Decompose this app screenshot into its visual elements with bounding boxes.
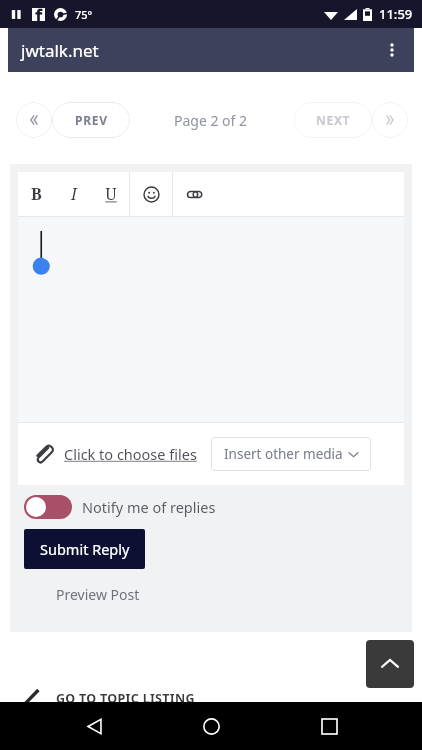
button[interactable]: B bbox=[18, 172, 55, 216]
staticText: U bbox=[105, 183, 117, 205]
staticText: I bbox=[71, 183, 77, 205]
button[interactable]: Insert other media bbox=[211, 437, 371, 471]
staticText: Click to choose files bbox=[64, 444, 197, 464]
button[interactable]: More options bbox=[370, 28, 414, 72]
button[interactable]: I bbox=[55, 172, 92, 216]
staticText: Insert other media bbox=[224, 445, 343, 463]
button[interactable]: First page bbox=[16, 102, 52, 138]
staticText: Submit Reply bbox=[40, 539, 130, 559]
staticText: 11:59 bbox=[379, 5, 413, 23]
staticText: Notify me of replies bbox=[82, 497, 216, 517]
button[interactable]: Recent apps bbox=[305, 702, 353, 750]
staticText: Page 2 of 2 bbox=[174, 111, 248, 130]
button[interactable]: NEXT bbox=[294, 102, 372, 138]
button[interactable]: Back bbox=[70, 702, 118, 750]
button[interactable]: Preview Post bbox=[56, 585, 140, 604]
button[interactable]: Submit Reply bbox=[24, 529, 145, 569]
button[interactable]: Click to choose files bbox=[32, 443, 197, 465]
staticText: jwtalk.net bbox=[21, 39, 99, 62]
button[interactable]: Scroll to top bbox=[366, 640, 414, 688]
staticText: 75° bbox=[75, 7, 93, 22]
button[interactable]: GO TO TOPIC LISTING bbox=[22, 688, 195, 708]
button[interactable]: U bbox=[92, 172, 129, 216]
button[interactable]: Emoji bbox=[130, 172, 172, 216]
button[interactable]: PREV bbox=[52, 102, 130, 138]
staticText: PREV bbox=[75, 112, 108, 128]
button[interactable]: Last page bbox=[372, 102, 408, 138]
staticText: GO TO TOPIC LISTING bbox=[56, 690, 195, 707]
staticText: NEXT bbox=[316, 112, 351, 128]
button[interactable]: Insert link bbox=[173, 172, 217, 216]
staticText: B bbox=[31, 183, 42, 205]
button[interactable]: Notify me of replies bbox=[18, 495, 216, 519]
button[interactable]: jwtalk.net bbox=[8, 28, 414, 72]
button[interactable]: Home bbox=[187, 702, 235, 750]
